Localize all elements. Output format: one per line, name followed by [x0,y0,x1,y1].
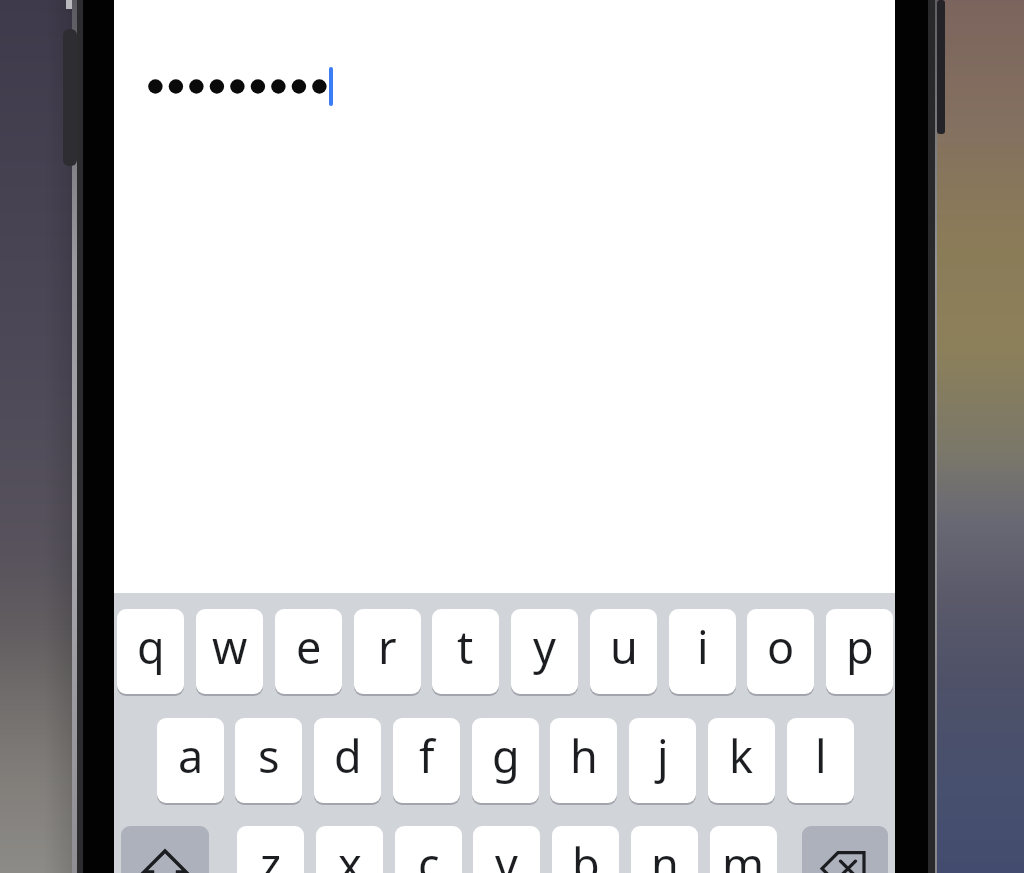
staticText: n [651,833,679,873]
button[interactable]: i [669,609,736,694]
button[interactable] [114,593,895,873]
button[interactable]: a [157,718,224,803]
staticText: t [457,616,474,677]
staticText: y [533,616,556,677]
staticText: l [815,725,827,786]
button[interactable]: f [393,718,460,803]
button[interactable]: h [550,718,617,803]
button[interactable] [802,826,888,873]
staticText: f [419,725,435,786]
staticText: m [722,833,765,873]
staticText: o [767,616,795,677]
button[interactable]: v [473,826,540,873]
button[interactable]: p [826,609,893,694]
staticText: k [729,725,754,786]
button[interactable]: r [354,609,421,694]
button[interactable]: e [275,609,342,694]
button[interactable]: u [590,609,657,694]
button[interactable]: n [631,826,698,873]
button[interactable]: k [708,718,775,803]
staticText: r [378,616,397,677]
staticText: s [258,725,280,786]
staticText: u [610,616,638,677]
button[interactable]: d [314,718,381,803]
button[interactable]: y [511,609,578,694]
staticText: z [260,833,282,873]
button[interactable] [121,826,209,873]
button[interactable]: q [117,609,184,694]
staticText: e [296,616,322,677]
staticText: v [495,833,518,873]
staticText: a [178,725,204,786]
staticText: p [846,616,874,677]
staticText: d [334,725,362,786]
staticText: i [697,616,709,677]
button[interactable]: x [316,826,383,873]
button[interactable]: m [710,826,777,873]
button[interactable]: g [472,718,539,803]
button[interactable]: t [432,609,499,694]
button[interactable]: j [629,718,696,803]
staticText: b [572,833,600,873]
staticText: w [212,616,248,677]
staticText: j [657,725,669,786]
button[interactable]: z [237,826,304,873]
button[interactable]: c [395,826,462,873]
button[interactable]: s [235,718,302,803]
staticText: g [492,725,520,786]
staticText: x [338,833,362,873]
button[interactable]: o [747,609,814,694]
staticText: q [137,616,165,677]
button[interactable]: w [196,609,263,694]
button[interactable]: b [552,826,619,873]
staticText: h [570,725,598,786]
staticText: c [418,833,440,873]
button[interactable]: l [787,718,854,803]
